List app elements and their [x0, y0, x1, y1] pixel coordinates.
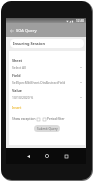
button[interactable]: Value	[12, 88, 82, 103]
button[interactable]: Sheet	[12, 58, 82, 73]
button[interactable]: Submit Query	[34, 125, 60, 132]
button[interactable]: Home	[43, 152, 51, 160]
staticText: Submit Query	[37, 127, 58, 131]
staticText: Sheet	[12, 58, 23, 63]
staticText: 10/10/2020 %	[12, 95, 80, 99]
staticText: Value	[12, 88, 22, 93]
staticText: 12:30	[76, 19, 85, 23]
staticText: Field	[12, 73, 21, 78]
button[interactable]: Insuring Session	[10, 39, 84, 48]
staticText: SOA Query	[16, 28, 37, 33]
button[interactable]: Recents	[62, 152, 70, 160]
staticText: Show exception	[12, 117, 36, 121]
staticText: SellSpecMktSheet.OtrAbstractField	[12, 80, 80, 84]
staticText: Insert	[12, 105, 22, 109]
staticText: Period filter	[47, 117, 65, 121]
button[interactable]: Show exception	[12, 117, 40, 121]
button[interactable]: Back	[24, 152, 32, 160]
staticText: Insuring Session	[13, 41, 45, 46]
button[interactable]: Back	[8, 27, 15, 34]
button[interactable]: Field	[12, 73, 82, 88]
staticText: Select All	[12, 65, 80, 69]
button[interactable]: Period filter	[43, 117, 65, 121]
